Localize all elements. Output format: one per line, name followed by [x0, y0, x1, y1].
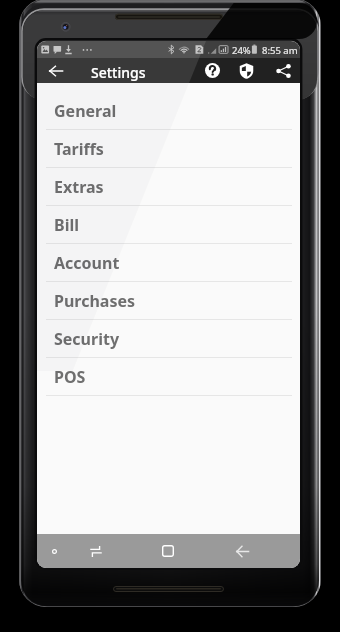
staticText: POS	[54, 366, 86, 388]
button[interactable]: Account	[37, 244, 300, 282]
button[interactable]: POS	[37, 358, 300, 396]
button[interactable]: Security	[37, 320, 300, 358]
staticText: Account	[54, 252, 120, 274]
button[interactable]: Share	[271, 58, 295, 83]
button[interactable]: Help	[200, 58, 224, 83]
button[interactable]: Tariffs	[37, 130, 300, 168]
button[interactable]: Recents	[155, 534, 181, 568]
staticText: Extras	[54, 176, 104, 198]
button[interactable]: Assistant	[44, 534, 64, 568]
button[interactable]: Bill	[37, 206, 300, 244]
staticText: Bill	[54, 214, 79, 236]
staticText: Tariffs	[54, 138, 104, 160]
staticText: Purchases	[54, 290, 136, 312]
button[interactable]: Extras	[37, 168, 300, 206]
staticText: Security	[54, 328, 120, 350]
staticText: Settings	[91, 63, 146, 82]
button[interactable]: General	[37, 92, 300, 130]
button[interactable]: Switch apps	[82, 534, 109, 568]
staticText: 8:55 am	[262, 44, 298, 57]
button[interactable]: Security	[234, 58, 258, 83]
staticText: General	[54, 100, 117, 122]
staticText: 24%	[232, 44, 251, 57]
button[interactable]: Purchases	[37, 282, 300, 320]
button[interactable]: Navigate up	[43, 58, 69, 83]
button[interactable]: Back	[229, 534, 255, 568]
